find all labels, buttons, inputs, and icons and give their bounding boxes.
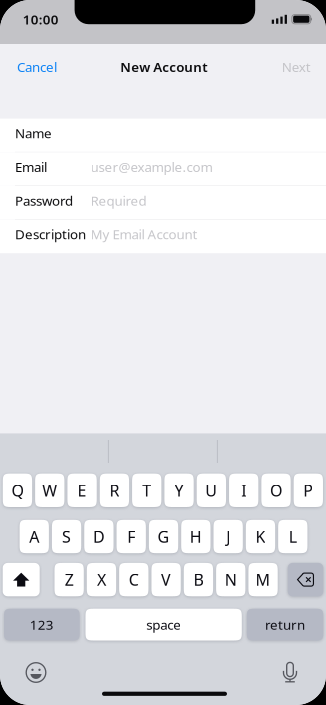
button[interactable]: Delete	[288, 563, 323, 596]
button[interactable]: C	[119, 563, 148, 596]
staticText: O	[270, 480, 282, 501]
staticText: Y	[175, 480, 184, 501]
button[interactable]: A	[20, 520, 49, 553]
button[interactable]: Next	[270, 48, 322, 86]
staticText: M	[256, 569, 271, 590]
button[interactable]: Emoji keyboard	[16, 655, 56, 689]
staticText: N	[225, 569, 237, 590]
staticText: W	[42, 480, 57, 501]
button[interactable]: J	[213, 520, 243, 553]
button[interactable]: I	[229, 474, 258, 507]
staticText: Name	[15, 124, 52, 142]
button[interactable]: Z	[54, 563, 84, 596]
button[interactable]: U	[197, 474, 226, 507]
button[interactable]: Cancel	[6, 48, 68, 86]
button[interactable]: B	[184, 563, 213, 596]
staticText: F	[127, 526, 135, 547]
staticText: Z	[65, 569, 74, 590]
staticText: Next	[282, 58, 311, 76]
staticText: My Email Account	[90, 225, 197, 243]
staticText: Description	[15, 225, 86, 243]
staticText: B	[193, 569, 203, 590]
staticText: user@example.com	[90, 158, 212, 176]
staticText: E	[78, 480, 87, 501]
button[interactable]: return	[247, 609, 323, 640]
staticText: Cancel	[17, 58, 57, 76]
button[interactable]: R	[100, 474, 129, 507]
staticText: 123	[30, 616, 54, 633]
button[interactable]: Description	[0, 0, 326, 705]
staticText: J	[226, 526, 230, 547]
staticText: G	[157, 526, 169, 547]
button[interactable]: H	[181, 520, 210, 553]
staticText: V	[161, 569, 171, 590]
staticText: T	[142, 480, 151, 501]
staticText: C	[129, 569, 139, 590]
button[interactable]: V	[151, 563, 181, 596]
button[interactable]: W	[35, 474, 64, 507]
staticText: Required	[90, 192, 146, 209]
staticText: A	[29, 526, 39, 547]
button[interactable]: Shift	[3, 563, 40, 596]
staticText: R	[109, 480, 119, 501]
staticText: Email	[15, 158, 47, 176]
button[interactable]: O	[261, 474, 291, 507]
button[interactable]: Email	[0, 0, 326, 705]
staticText: H	[190, 526, 202, 547]
button[interactable]: S	[52, 520, 81, 553]
staticText: S	[62, 526, 71, 547]
staticText: return	[265, 616, 305, 633]
staticText: L	[289, 526, 297, 547]
staticText: X	[97, 569, 106, 590]
staticText: P	[303, 480, 313, 501]
button[interactable]: M	[248, 563, 278, 596]
button[interactable]: G	[149, 520, 178, 553]
button[interactable]: X	[87, 563, 116, 596]
staticText: Password	[15, 192, 73, 209]
staticText: D	[93, 526, 105, 547]
staticText: space	[146, 616, 181, 633]
button[interactable]: Password	[0, 0, 326, 705]
button[interactable]: Name	[0, 0, 326, 705]
button[interactable]: space	[85, 609, 242, 640]
button[interactable]: E	[67, 474, 97, 507]
button[interactable]: N	[216, 563, 245, 596]
staticText: Q	[11, 480, 23, 501]
button[interactable]: Dictation	[270, 655, 310, 689]
button[interactable]: K	[246, 520, 275, 553]
button[interactable]: L	[278, 520, 307, 553]
button[interactable]: Q	[3, 474, 32, 507]
button[interactable]: D	[84, 520, 113, 553]
button[interactable]: F	[117, 520, 146, 553]
staticText: New Account	[120, 58, 207, 76]
staticText: K	[255, 526, 265, 547]
button[interactable]: T	[132, 474, 161, 507]
staticText: U	[205, 480, 217, 501]
staticText: 10:00	[23, 10, 59, 28]
staticText: I	[241, 480, 246, 501]
button[interactable]: P	[294, 474, 323, 507]
button[interactable]: 123	[4, 609, 80, 640]
button[interactable]: Y	[164, 474, 194, 507]
